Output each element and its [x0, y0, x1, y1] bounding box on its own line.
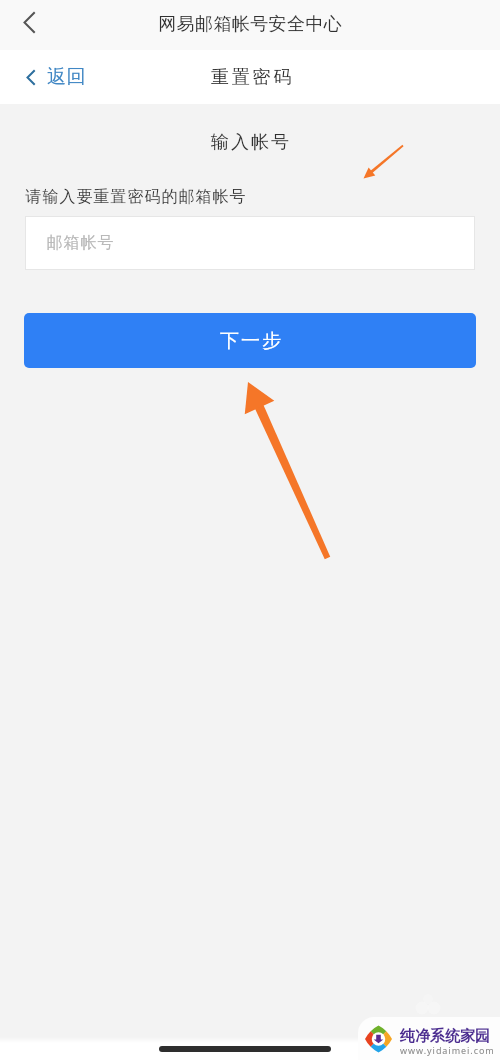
button[interactable]: 下一步	[24, 313, 476, 368]
staticText: 下一步	[219, 329, 282, 353]
staticText: www.yidaimei.com	[400, 1044, 495, 1056]
button[interactable]: 返回	[26, 50, 87, 104]
staticText: 重置密码	[211, 66, 295, 89]
button[interactable]: 邮箱帐号	[25, 216, 475, 270]
staticText: 返回	[47, 65, 87, 89]
button[interactable]: Back	[11, 4, 47, 40]
staticText: 邮箱帐号	[46, 233, 114, 253]
staticText: 输入帐号	[1, 131, 500, 154]
staticText: 网易邮箱帐号安全中心	[158, 13, 342, 36]
staticText: 请输入要重置密码的邮箱帐号	[25, 187, 246, 207]
staticText: 纯净系统家园	[400, 1027, 490, 1046]
